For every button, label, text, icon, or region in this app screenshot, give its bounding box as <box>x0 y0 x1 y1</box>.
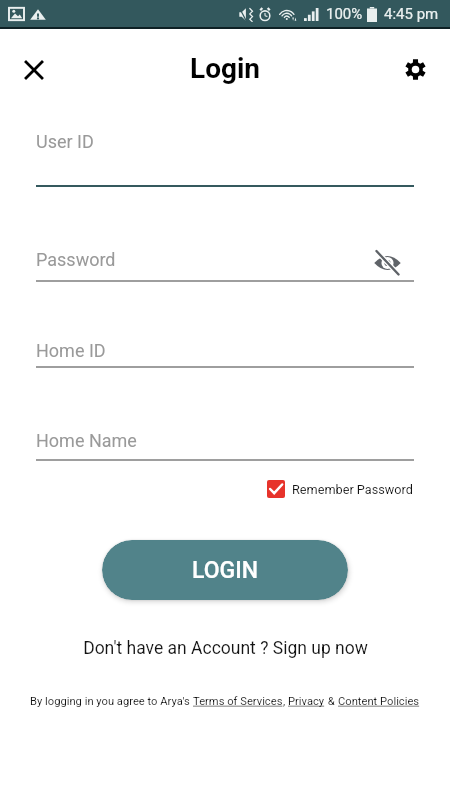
button[interactable]: Toggle password visibility <box>371 246 404 279</box>
staticText: Home ID <box>36 340 106 361</box>
staticText: Home Name <box>36 430 137 451</box>
button[interactable]: Terms of Services <box>193 695 283 708</box>
button[interactable]: Close <box>11 47 56 92</box>
staticText: & <box>325 695 338 708</box>
button[interactable]: LOGIN <box>102 540 348 600</box>
button[interactable]: Home Name <box>36 420 366 464</box>
button[interactable]: Privacy <box>288 695 325 708</box>
button[interactable]: Settings <box>393 47 438 92</box>
staticText: By logging in you agree to Arya's <box>30 695 193 708</box>
button[interactable]: User ID <box>36 121 366 165</box>
button[interactable]: Password <box>36 239 366 283</box>
staticText: LOGIN <box>192 557 259 584</box>
button[interactable]: Home ID <box>36 330 366 374</box>
button[interactable]: Remember Password <box>267 480 413 498</box>
staticText: User ID <box>36 131 94 152</box>
button[interactable]: Don't have an Account ? Sign up now <box>83 638 368 659</box>
staticText: 100% <box>326 5 363 23</box>
staticText: 4:45 pm <box>384 5 439 23</box>
button[interactable]: Content Policies <box>338 695 420 708</box>
staticText: , <box>283 695 288 708</box>
staticText: Password <box>36 249 116 270</box>
staticText: Login <box>190 52 261 85</box>
staticText: Remember Password <box>292 482 413 497</box>
